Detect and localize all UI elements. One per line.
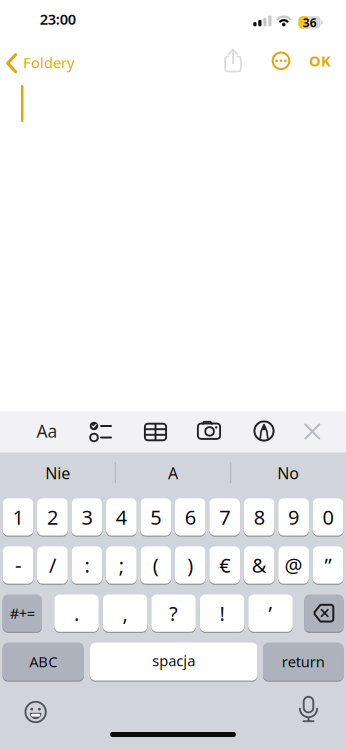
button[interactable]: ’ — [248, 594, 293, 632]
staticText: No — [277, 462, 299, 484]
button[interactable]: ( — [140, 546, 171, 584]
button[interactable]: 0 — [313, 498, 343, 536]
staticText: OK — [309, 51, 331, 71]
staticText: ( — [153, 552, 159, 578]
button[interactable]: Formatowanie — [29, 414, 65, 448]
button[interactable]: spacja — [90, 642, 257, 681]
staticText: ; — [119, 552, 124, 578]
staticText: ABC — [29, 652, 57, 671]
staticText: 3 — [81, 504, 92, 530]
staticText: spacja — [152, 651, 195, 670]
staticText: #+= — [10, 603, 35, 623]
button[interactable]: 7 — [209, 498, 240, 536]
staticText: € — [219, 552, 230, 578]
button[interactable]: . — [54, 594, 99, 632]
button[interactable]: Więcej — [265, 45, 297, 77]
staticText: 0 — [322, 504, 333, 530]
staticText: ! — [220, 600, 225, 626]
staticText: - — [15, 552, 21, 578]
button[interactable]: Foldery — [0, 45, 90, 79]
staticText: 8 — [254, 504, 265, 530]
button[interactable]: OK — [302, 45, 338, 77]
button[interactable]: @ — [278, 546, 309, 584]
staticText: return — [282, 652, 325, 671]
staticText: . — [74, 600, 79, 626]
button[interactable]: A — [118, 453, 228, 493]
button[interactable]: No — [233, 453, 343, 493]
staticText: & — [252, 552, 267, 578]
button[interactable]: : — [71, 546, 102, 584]
button[interactable]: Aparat — [191, 415, 227, 449]
button[interactable]: ” — [313, 546, 343, 584]
button[interactable]: ; — [106, 546, 137, 584]
staticText: : — [84, 552, 89, 578]
staticText: 36 — [303, 15, 317, 30]
staticText: Foldery — [23, 53, 74, 72]
button[interactable]: 9 — [278, 498, 309, 536]
button[interactable]: ABC — [3, 642, 84, 681]
staticText: A — [168, 462, 178, 484]
staticText: 23:00 — [40, 9, 76, 29]
button[interactable]: ) — [175, 546, 206, 584]
button[interactable]: ? — [151, 594, 196, 632]
staticText: ” — [324, 552, 331, 578]
button[interactable]: - — [3, 546, 33, 584]
button[interactable]: #+= — [3, 594, 42, 632]
button[interactable]: Nie — [3, 453, 113, 493]
staticText: 2 — [47, 504, 58, 530]
button[interactable]: Zamknij — [294, 414, 330, 448]
staticText: / — [49, 552, 56, 578]
staticText: 7 — [219, 504, 230, 530]
button[interactable]: Dyktowanie — [290, 694, 326, 730]
button[interactable]: 4 — [106, 498, 137, 536]
button[interactable]: 3 — [71, 498, 102, 536]
button[interactable]: 8 — [244, 498, 275, 536]
staticText: @ — [285, 552, 303, 578]
button[interactable]: Lista — [83, 414, 119, 448]
button[interactable]: & — [244, 546, 275, 584]
button[interactable]: 1 — [3, 498, 33, 536]
button[interactable]: return — [263, 642, 343, 681]
staticText: 9 — [288, 504, 299, 530]
button[interactable]: Oznaczenia — [246, 414, 282, 448]
button[interactable]: / — [37, 546, 68, 584]
staticText: 1 — [12, 504, 23, 530]
staticText: 6 — [185, 504, 196, 530]
staticText: ? — [169, 600, 178, 626]
button[interactable]: € — [209, 546, 240, 584]
button[interactable]: Usuń — [304, 594, 344, 632]
staticText: , — [122, 600, 127, 626]
button[interactable]: Tabela — [137, 415, 173, 449]
staticText: ) — [187, 552, 193, 578]
button[interactable]: Udostępnij — [216, 44, 250, 78]
staticText: Aa — [36, 419, 57, 442]
button[interactable]: Emoji — [18, 694, 54, 730]
button[interactable]: 6 — [175, 498, 206, 536]
button[interactable]: ! — [200, 594, 244, 632]
button[interactable]: 2 — [37, 498, 68, 536]
staticText: ’ — [269, 600, 273, 626]
staticText: Nie — [45, 462, 70, 484]
staticText: 4 — [116, 504, 127, 530]
button[interactable]: 5 — [140, 498, 171, 536]
button[interactable]: , — [103, 594, 147, 632]
staticText: 5 — [150, 504, 161, 530]
